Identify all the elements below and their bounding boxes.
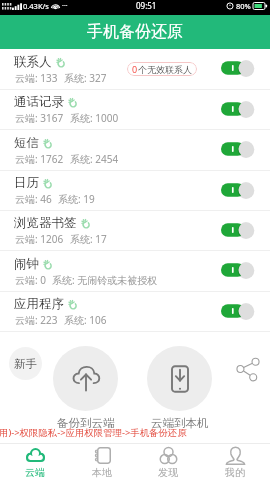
staticText: 系统: 1000 [70,111,119,125]
button[interactable]: 本地 [71,443,133,480]
staticText: ··· [62,1,68,11]
staticText: 云端: 3167 [15,111,64,125]
button[interactable]: 联系人 [0,49,270,90]
staticText: 云端: 1762 [15,152,64,166]
staticText: 系统: 106 [64,313,107,327]
button[interactable]: 0 [132,62,192,76]
button[interactable]: 闹钟 [0,251,270,292]
staticText: 云端: 1206 [15,232,64,246]
staticText: 系统: 327 [64,71,107,85]
button[interactable]: 我的 [204,443,266,480]
staticText: 系统: 2454 [70,152,119,166]
button[interactable]: 短信 [0,130,270,171]
staticText: 应用程序 [14,296,64,312]
button[interactable]: 分享 [234,355,262,383]
staticText: 0.43K/s [23,1,49,11]
staticText: 闹钟 [14,256,39,272]
staticText: 本地 [92,466,112,479]
staticText: 云端: 0 [15,273,46,287]
staticText: 云端 [25,466,45,479]
staticText: 云端: 46 [15,192,52,206]
button[interactable] [221,222,254,238]
button[interactable] [221,60,254,76]
button[interactable]: 日历 [0,171,270,211]
staticText: 备份到云端 [57,416,115,430]
staticText: 联系人 [14,54,52,70]
staticText: 日历 [14,175,39,191]
staticText: 系统: 无闹铃或未被授权 [52,273,158,287]
button[interactable]: 云端 [4,443,66,480]
staticText: 09:51 [136,0,157,11]
staticText: 个无效联系人 [138,64,192,75]
button[interactable]: 应用程序 [0,292,270,332]
button[interactable]: 浏览器书签 [0,211,270,251]
button[interactable] [147,346,212,411]
staticText: 80% [236,1,251,11]
button[interactable] [221,101,254,117]
button[interactable] [221,141,254,157]
button[interactable] [221,262,254,278]
staticText: 浏览器书签 [14,215,77,231]
staticText: 系统: 17 [70,232,107,246]
staticText: 0 [132,63,138,75]
staticText: 发现 [158,466,178,479]
staticText: 我的 [225,466,245,479]
staticText: 系统: 19 [58,192,95,206]
button[interactable] [221,303,254,319]
staticText: 新手 [14,357,37,371]
button[interactable] [53,346,118,411]
staticText: 云端: 133 [15,71,58,85]
button[interactable] [221,182,254,198]
button[interactable]: 新手 [9,347,42,380]
staticText: 手机备份还原 [87,22,183,42]
staticText: 通话记录 [14,94,64,110]
staticText: 云端到本机 [151,416,209,430]
staticText: 用)->权限隐私->应用权限管理->手机备份还原 [0,426,187,439]
staticText: 云端: 223 [15,313,58,327]
button[interactable]: 发现 [137,443,199,480]
staticText: 短信 [14,135,39,151]
button[interactable]: 通话记录 [0,90,270,130]
